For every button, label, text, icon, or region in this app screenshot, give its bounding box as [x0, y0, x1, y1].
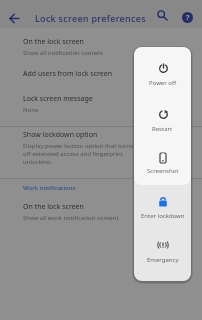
staticText: Emergency: [147, 256, 179, 264]
button[interactable]: Restart: [134, 102, 191, 141]
button[interactable]: On the lock screen: [0, 35, 202, 57]
staticText: Enter lockdown: [141, 212, 185, 220]
button[interactable]: Screenshot: [134, 146, 191, 183]
button[interactable]: [155, 8, 170, 23]
staticText: Lock screen message: [23, 94, 93, 104]
staticText: Screenshot: [147, 167, 179, 175]
staticText: On the lock screen: [23, 202, 84, 212]
staticText: Show lockdown option: [23, 130, 98, 140]
staticText: off extended access and fingerprint: [23, 150, 123, 158]
button[interactable]: Power off: [134, 56, 191, 95]
staticText: ?: [186, 13, 190, 23]
staticText: Work notifications: [23, 184, 76, 192]
staticText: On the lock screen: [23, 37, 84, 47]
button[interactable]: Emergency: [134, 233, 191, 272]
button[interactable]: Show lockdown option: [0, 128, 202, 164]
staticText: Lock screen preferences: [35, 12, 146, 24]
staticText: Add users from lock screen: [23, 69, 112, 79]
button[interactable]: On the lock screen: [0, 200, 202, 222]
staticText: Restart: [152, 125, 173, 133]
staticText: Display power button option that turns: [23, 142, 133, 150]
staticText: Show all notification content: [23, 49, 103, 57]
button[interactable]: ?: [182, 12, 193, 23]
staticText: Show all work notification content: [23, 214, 119, 222]
button[interactable]: Enter lockdown: [134, 190, 191, 228]
staticText: Power off: [149, 79, 177, 87]
button[interactable]: Add users from lock screen: [0, 67, 202, 85]
staticText: unlocking.: [23, 158, 53, 164]
button[interactable]: [6, 10, 23, 27]
staticText: None: [23, 106, 39, 114]
button[interactable]: Lock screen message: [0, 92, 202, 114]
